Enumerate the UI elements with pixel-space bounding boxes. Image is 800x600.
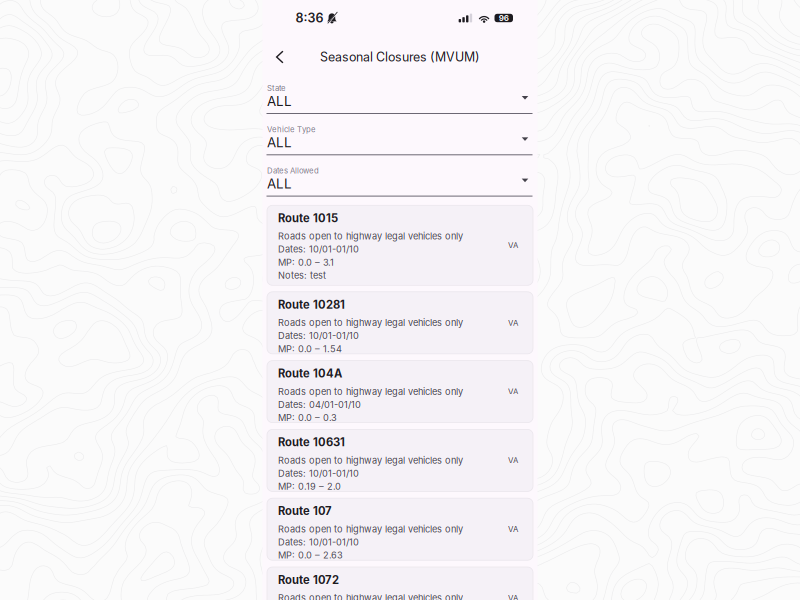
staticText: Seasonal Closures (MVUM) [320, 49, 480, 64]
staticText: MP: 0.0 – 1.54 [278, 343, 342, 354]
staticText: ALL [267, 134, 292, 150]
staticText: ALL [267, 93, 292, 109]
staticText: VA [508, 456, 518, 465]
staticText: Route 10281 [278, 298, 345, 311]
staticText: MP: 0.0 – 3.1 [278, 257, 334, 268]
staticText: Roads open to highway legal vehicles onl… [278, 231, 463, 242]
staticText: Roads open to highway legal vehicles onl… [278, 524, 463, 535]
staticText: Roads open to highway legal vehicles onl… [278, 386, 463, 397]
staticText: Roads open to highway legal vehicles onl… [278, 317, 463, 328]
button[interactable]: Route 10631 [267, 430, 533, 492]
staticText: VA [508, 318, 518, 328]
staticText: 96 [499, 13, 509, 23]
button[interactable]: State [262, 78, 537, 119]
staticText: Dates: 10/01-01/10 [278, 468, 359, 479]
button[interactable]: Vehicle Type [262, 119, 537, 161]
button[interactable]: Route 10281 [267, 292, 533, 354]
button[interactable]: Route 1072 [267, 567, 533, 600]
staticText: Route 1015 [278, 211, 338, 225]
staticText: VA [508, 524, 518, 534]
staticText: 8:36 [295, 10, 323, 26]
staticText: Roads open to highway legal vehicles onl… [278, 455, 463, 466]
staticText: Route 1072 [278, 573, 339, 587]
button[interactable]: Route 107 [267, 498, 533, 560]
staticText: Route 107 [278, 504, 332, 518]
button[interactable]: Route 1015 [267, 205, 533, 285]
button[interactable]: Back [266, 44, 292, 70]
staticText: Dates: 04/01-01/10 [278, 399, 361, 410]
staticText: Route 104A [278, 367, 342, 380]
staticText: MP: 0.0 – 2.63 [278, 550, 343, 561]
staticText: MP: 0.19 – 2.0 [278, 481, 341, 492]
staticText: Route 10631 [278, 435, 345, 449]
staticText: State [267, 83, 286, 93]
staticText: Dates Allowed [267, 166, 319, 175]
staticText: Dates: 10/01-01/10 [278, 330, 359, 341]
staticText: Dates: 10/01-01/10 [278, 244, 359, 255]
staticText: MP: 0.0 – 0.3 [278, 412, 337, 423]
staticText: VA [508, 593, 518, 600]
staticText: Dates: 10/01-01/10 [278, 537, 359, 548]
button[interactable]: Route 104A [267, 361, 533, 423]
staticText: Vehicle Type [267, 125, 316, 134]
button[interactable]: Dates Allowed [262, 161, 537, 202]
staticText: Notes: test [278, 270, 326, 281]
staticText: ALL [267, 176, 292, 192]
staticText: Roads open to highway legal vehicles onl… [278, 592, 463, 600]
staticText: VA [508, 387, 518, 396]
staticText: VA [508, 240, 518, 250]
